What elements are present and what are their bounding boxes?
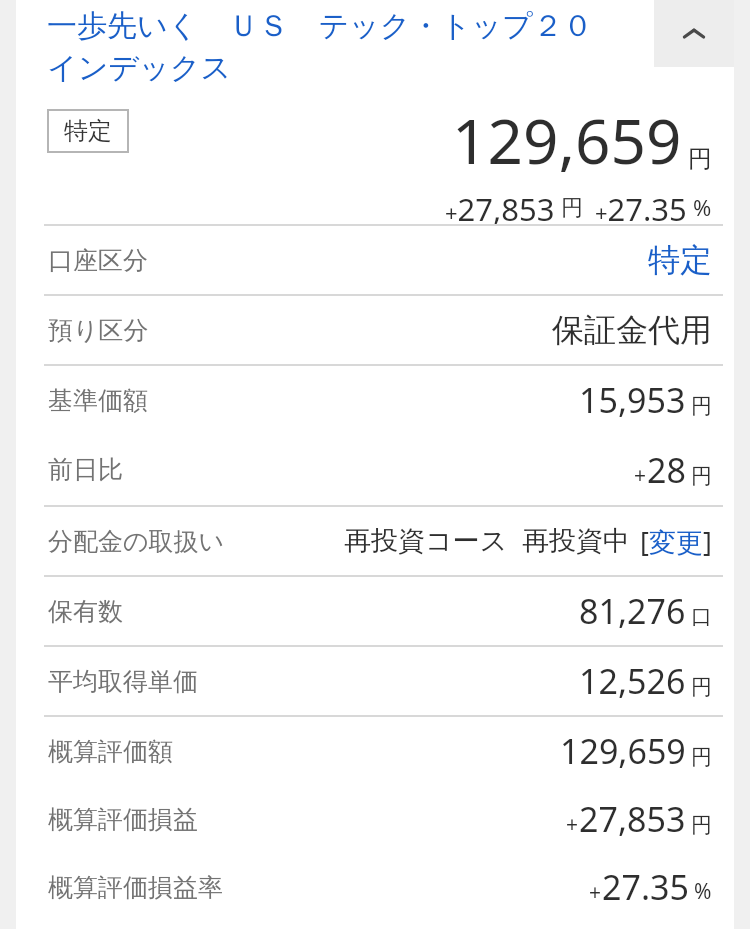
staticText: 129,659 [560,728,686,774]
staticText: 再投資コース [344,524,508,558]
button[interactable]: 口座区分 [16,226,734,294]
button[interactable]: 保有数 [16,577,734,645]
staticText: 前日比 [48,454,123,485]
staticText: 概算評価損益率 [48,872,223,903]
staticText: 概算評価額 [48,736,173,767]
staticText: 概算評価損益 [48,804,198,835]
staticText: +27,853 [445,188,555,224]
button[interactable]: 前日比 [16,434,734,505]
staticText: 円 [691,812,712,838]
staticText: 基準価額 [48,385,148,416]
staticText: +27.35 [595,188,687,224]
staticText: 口 [691,604,712,630]
staticText: 円 [691,393,712,419]
button[interactable]: 折りたたむ [654,0,734,67]
button[interactable]: 一歩先いく ＵＳ テック・トップ２０ インデックス [47,4,648,84]
staticText: 27,853 [579,796,686,842]
staticText: 保証金代用 [552,310,712,350]
button[interactable]: 平均取得単価 [16,647,734,715]
staticText: 12,526 [579,658,686,704]
staticText: 円 [691,674,712,700]
button[interactable]: 預り区分 [16,296,734,364]
staticText: 15,953 [579,377,686,423]
staticText: 81,276 [579,588,686,634]
button[interactable]: 基準価額 [16,366,734,434]
staticText: + [566,810,579,839]
staticText: 一歩先いく ＵＳ テック・トップ２０ インデックス [47,4,593,84]
staticText: 円 [561,194,583,222]
staticText: 特定 [64,116,112,146]
staticText: 口座区分 [48,245,148,276]
staticText: 129,659 [452,98,682,182]
button[interactable]: 分配金の取扱い [16,507,734,575]
staticText: 27.35 [602,864,689,910]
staticText: + [589,878,602,907]
button[interactable]: 特定 [47,109,129,153]
staticText: 平均取得単価 [48,666,198,697]
staticText: 預り区分 [48,315,149,346]
staticText: % [694,877,712,906]
staticText: 円 [691,744,712,770]
button[interactable]: 概算評価損益 [16,785,734,853]
staticText: % [693,192,712,222]
staticText: 円 [691,463,712,489]
staticText: [変更] [640,523,712,560]
button[interactable]: 概算評価損益率 [16,853,734,921]
staticText: 保有数 [48,596,123,627]
staticText: + [634,461,647,490]
staticText: 再投資中 [522,524,630,558]
staticText: 円 [688,144,712,174]
staticText: 分配金の取扱い [48,526,225,557]
staticText: 28 [647,447,686,493]
staticText: 特定 [648,240,712,280]
button[interactable]: 概算評価額 [16,717,734,785]
